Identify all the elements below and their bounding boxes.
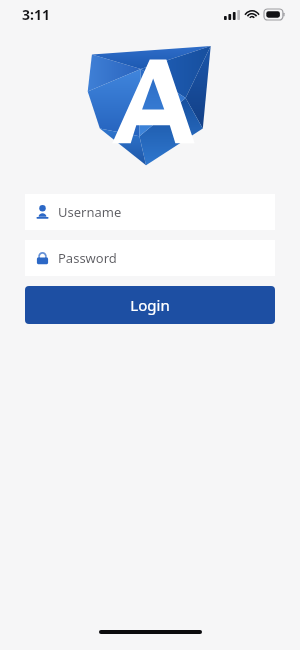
staticText: Username (58, 203, 122, 221)
button[interactable]: Login (25, 286, 275, 324)
other: User (36, 205, 49, 219)
other: Password (36, 251, 49, 265)
button[interactable]: Password (25, 240, 275, 276)
staticText: Password (58, 249, 117, 267)
staticText: Login (130, 295, 170, 315)
button[interactable]: User (25, 194, 275, 230)
staticText: 3:11 (22, 5, 50, 24)
